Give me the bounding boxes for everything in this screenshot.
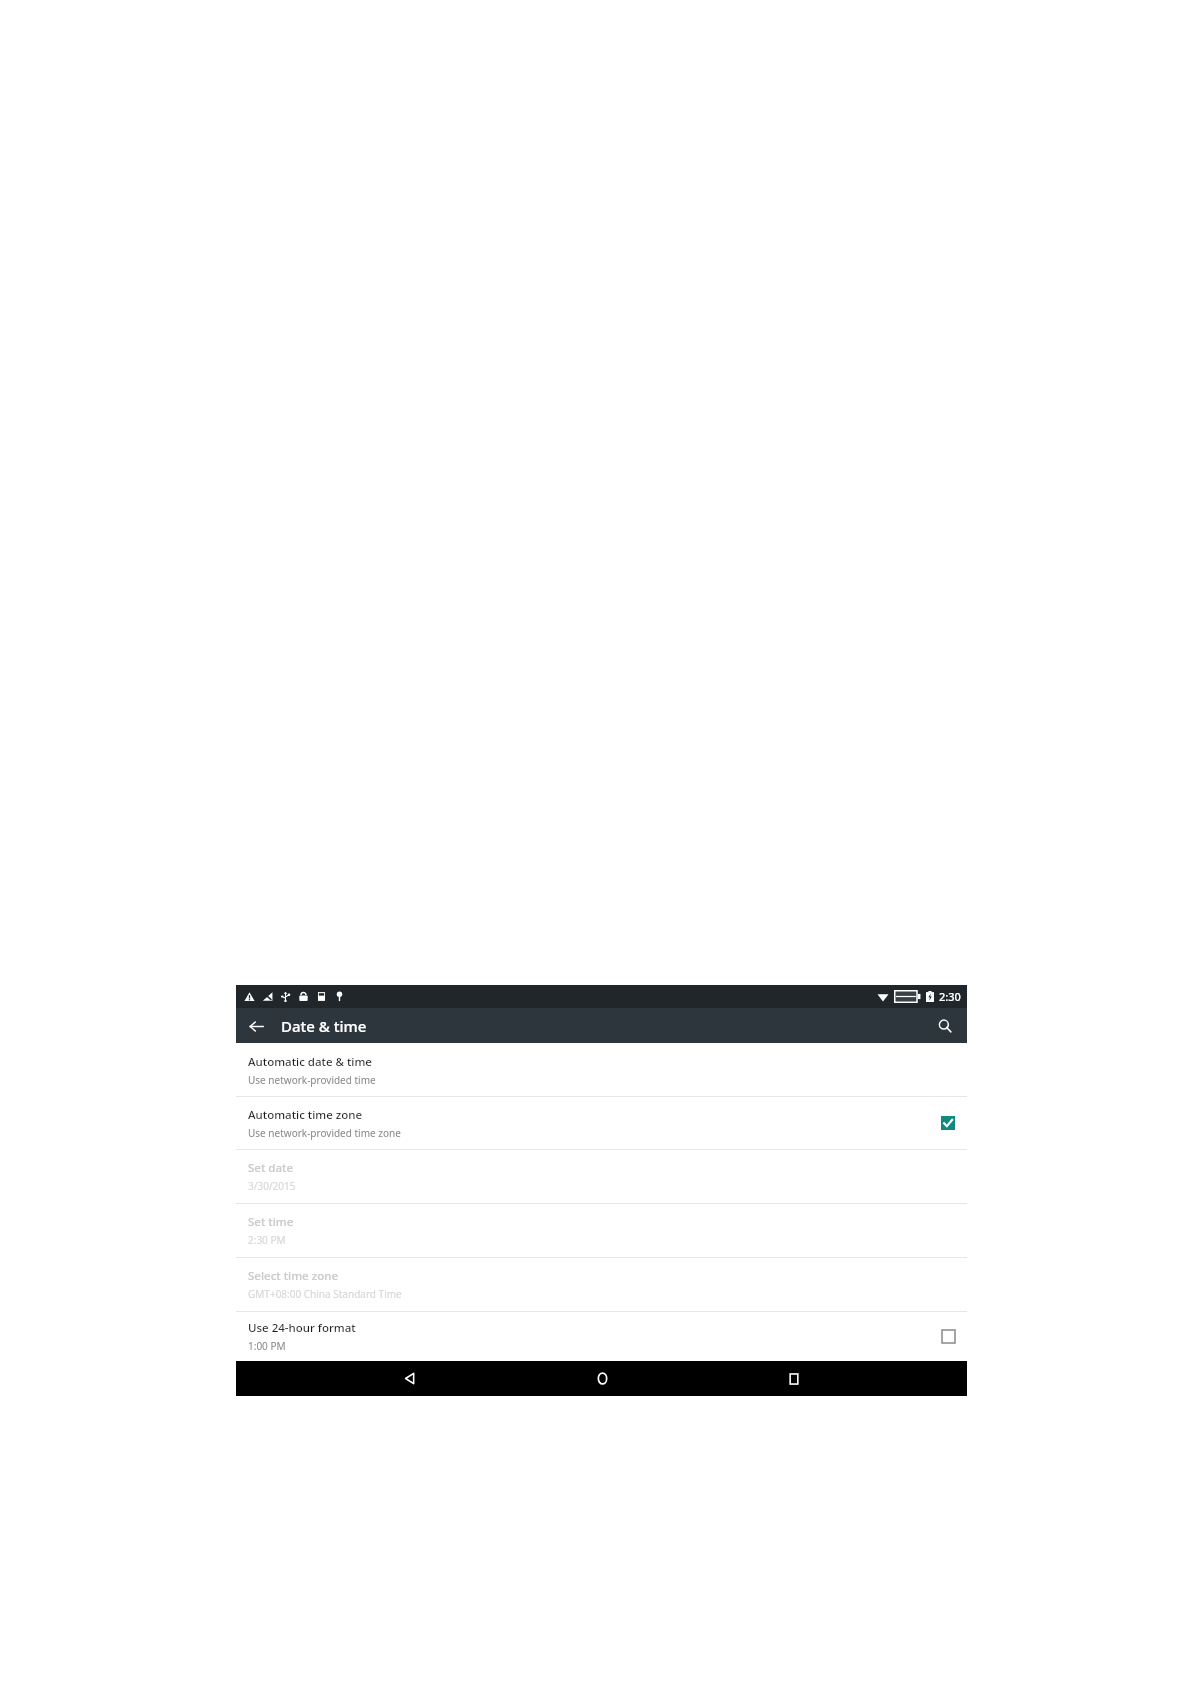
staticText: 3/30/2015 (248, 1179, 296, 1193)
button[interactable]: Back (389, 1361, 429, 1396)
button[interactable]: Use 24-hour format (236, 1312, 967, 1361)
staticText: Automatic date & time (248, 1054, 372, 1070)
button[interactable]: Home (582, 1361, 622, 1396)
staticText: Select time zone (248, 1268, 338, 1284)
button[interactable]: Recent apps (774, 1361, 814, 1396)
staticText: Set time (248, 1214, 294, 1230)
button[interactable]: Select time zone (236, 1258, 967, 1311)
staticText: Use network-provided time zone (248, 1126, 401, 1140)
staticText: GMT+08:00 China Standard Time (248, 1287, 402, 1301)
button[interactable]: Set time (236, 1204, 967, 1257)
staticText: Use network-provided time (248, 1073, 376, 1087)
button[interactable]: Navigate up (242, 1012, 270, 1040)
staticText: 2:30 PM (248, 1233, 286, 1247)
staticText: 2:30 (939, 989, 961, 1004)
staticText: 1:00 PM (248, 1339, 286, 1353)
button[interactable]: Search (931, 1012, 959, 1040)
button[interactable]: Automatic time zone (236, 1097, 967, 1149)
staticText: Use 24-hour format (248, 1320, 356, 1336)
staticText: Automatic time zone (248, 1107, 363, 1123)
button[interactable]: Automatic date & time (236, 1044, 967, 1096)
button[interactable]: Set date (236, 1150, 967, 1203)
staticText: Set date (248, 1160, 294, 1176)
staticText: Date & time (281, 1016, 367, 1036)
